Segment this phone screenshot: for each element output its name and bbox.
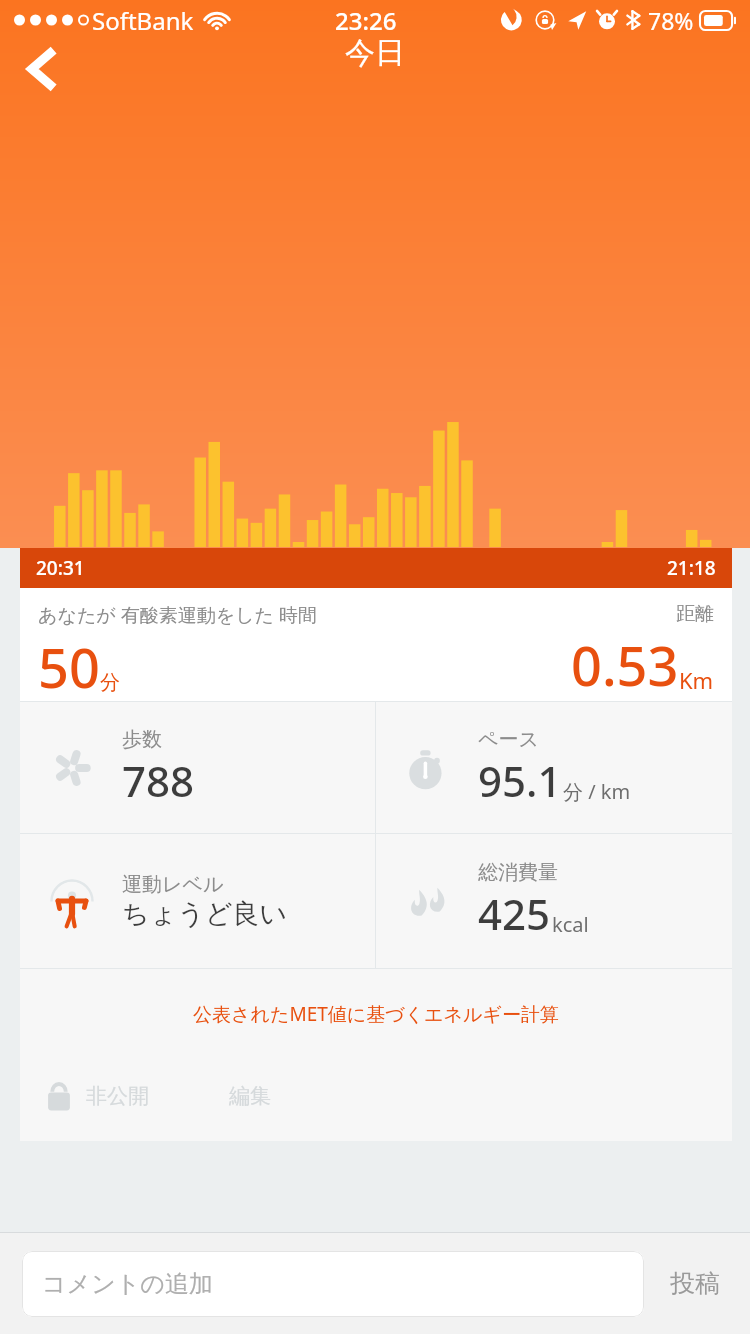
staticText: 0.53 [571,628,679,701]
button[interactable]: Steps [20,702,375,833]
staticText: 50 [38,630,100,701]
button[interactable]: Exercise level [20,834,375,968]
staticText: 425 [478,885,551,942]
staticText: 今日 [345,34,405,72]
button[interactable]: 編集 [219,1073,281,1119]
staticText: 非公開 [86,1083,149,1109]
staticText: SoftBank [92,4,194,37]
button[interactable]: 公表されたMET値に基づくエネルギー計算 [193,1001,559,1027]
staticText: コメントの追加 [42,1269,213,1299]
staticText: 運動レベル [122,872,224,897]
button[interactable]: 投稿 [644,1254,728,1313]
staticText: 距離 [676,602,714,626]
staticText: あなたが 有酸素運動をした 時間 [38,602,317,628]
button[interactable]: コメントの追加 [22,1251,644,1317]
button[interactable]: Back [18,39,64,99]
staticText: 投稿 [670,1268,720,1299]
button[interactable]: Calories [376,834,732,968]
staticText: 788 [122,752,195,809]
staticText: kcal [552,911,589,938]
staticText: 95.1 [478,752,562,809]
staticText: Km [679,665,714,695]
staticText: 編集 [229,1083,271,1109]
staticText: ペース [478,727,539,752]
staticText: 総消費量 [478,860,558,885]
button[interactable]: Pace [376,702,732,833]
staticText: 分 [100,670,120,695]
staticText: 分 / km [563,778,631,805]
staticText: 23:26 [335,4,397,37]
staticText: 78% [648,5,694,36]
button[interactable]: 非公開 [20,1075,159,1117]
staticText: 歩数 [122,727,162,752]
staticText: 21:18 [667,555,716,581]
staticText: 20:31 [36,555,85,581]
staticText: ちょうど良い [122,897,288,931]
